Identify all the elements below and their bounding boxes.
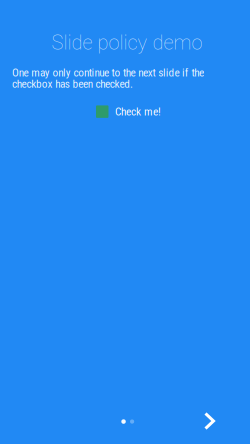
staticText: Slide policy demo: [51, 31, 202, 54]
staticText: Check me!: [115, 105, 161, 118]
button[interactable]: Check me!: [96, 105, 161, 118]
staticText: One may only continue to the next slide …: [12, 66, 204, 79]
staticText: checkbox has been checked.: [12, 77, 133, 91]
button[interactable]: Next slide: [187, 399, 231, 443]
